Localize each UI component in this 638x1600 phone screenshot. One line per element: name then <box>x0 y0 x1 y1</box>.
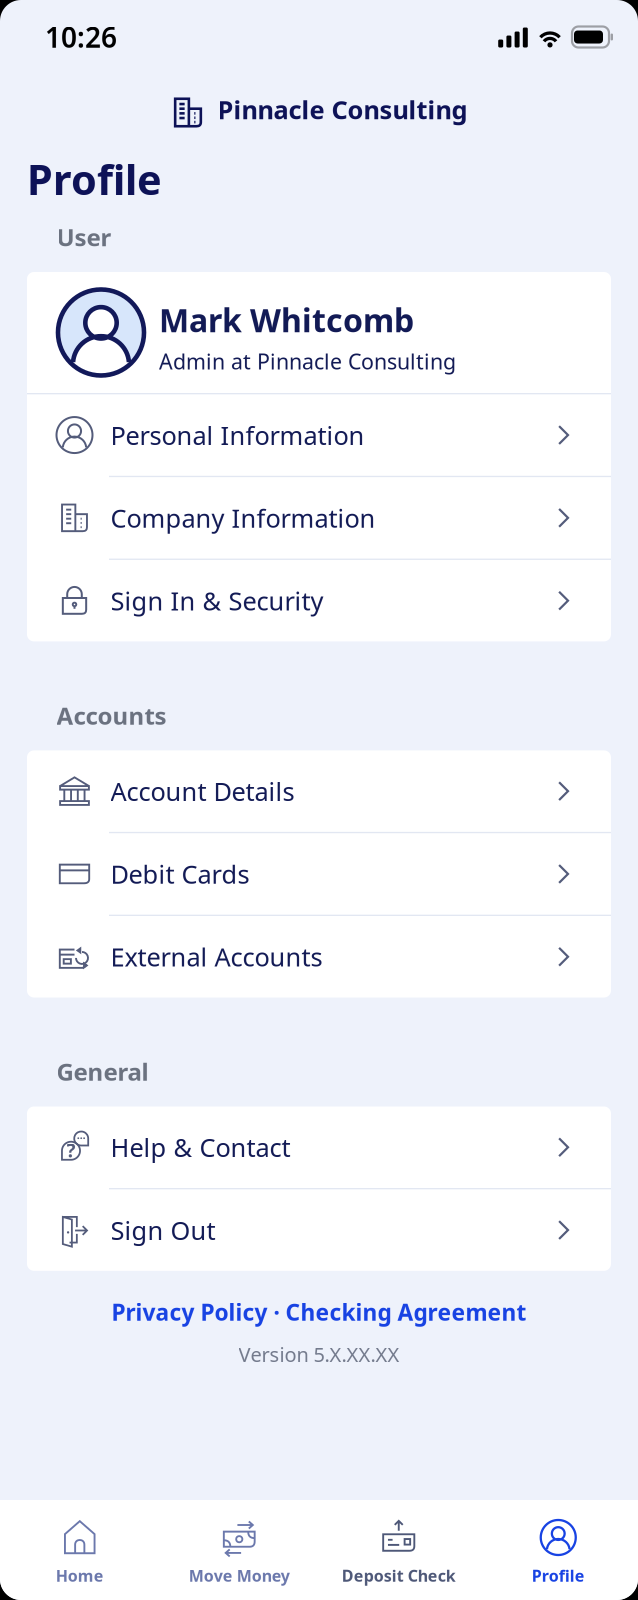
staticText: Admin at Pinnacle Consulting <box>159 347 456 375</box>
staticText: Version 5.X.XX.XX <box>238 1341 399 1367</box>
button[interactable]: Personal Information <box>27 394 611 476</box>
staticText: Account Details <box>110 774 294 808</box>
button[interactable]: Home <box>0 1519 159 1583</box>
staticText: Accounts <box>56 699 166 731</box>
staticText: Profile <box>27 152 162 206</box>
staticText: Help & Contact <box>110 1130 290 1164</box>
staticText: Debit Cards <box>110 857 249 891</box>
button[interactable]: ? <box>27 1106 611 1188</box>
button[interactable]: Move Money <box>159 1519 319 1583</box>
staticText: Deposit Check <box>342 1565 456 1586</box>
button[interactable]: Sign In & Security <box>27 560 611 641</box>
button[interactable]: Deposit Check <box>319 1519 478 1583</box>
staticText: ? <box>66 1138 75 1163</box>
staticText: Privacy Policy · Checking Agreement <box>111 1297 526 1327</box>
staticText: Move Money <box>189 1565 290 1586</box>
button[interactable]: Privacy Policy · Checking Agreement <box>111 1294 526 1330</box>
staticText: 10:26 <box>45 18 117 56</box>
staticText: Mark Whitcomb <box>159 299 414 341</box>
staticText: Company Information <box>110 501 375 535</box>
button[interactable]: Sign Out <box>27 1189 611 1271</box>
staticText: User <box>56 221 111 253</box>
staticText: External Accounts <box>110 940 322 973</box>
staticText: Home <box>56 1565 104 1586</box>
staticText: Personal Information <box>110 418 364 452</box>
button[interactable]: Profile <box>478 1519 638 1583</box>
button[interactable]: External Accounts <box>27 916 611 997</box>
button[interactable]: Debit Cards <box>27 833 611 915</box>
button[interactable]: Account Details <box>27 750 611 832</box>
staticText: Pinnacle Consulting <box>217 93 467 126</box>
staticText: General <box>56 1056 148 1087</box>
staticText: Sign In & Security <box>110 584 323 617</box>
button[interactable]: Company Information <box>27 477 611 559</box>
staticText: Profile <box>532 1565 585 1586</box>
staticText: Sign Out <box>110 1213 215 1247</box>
